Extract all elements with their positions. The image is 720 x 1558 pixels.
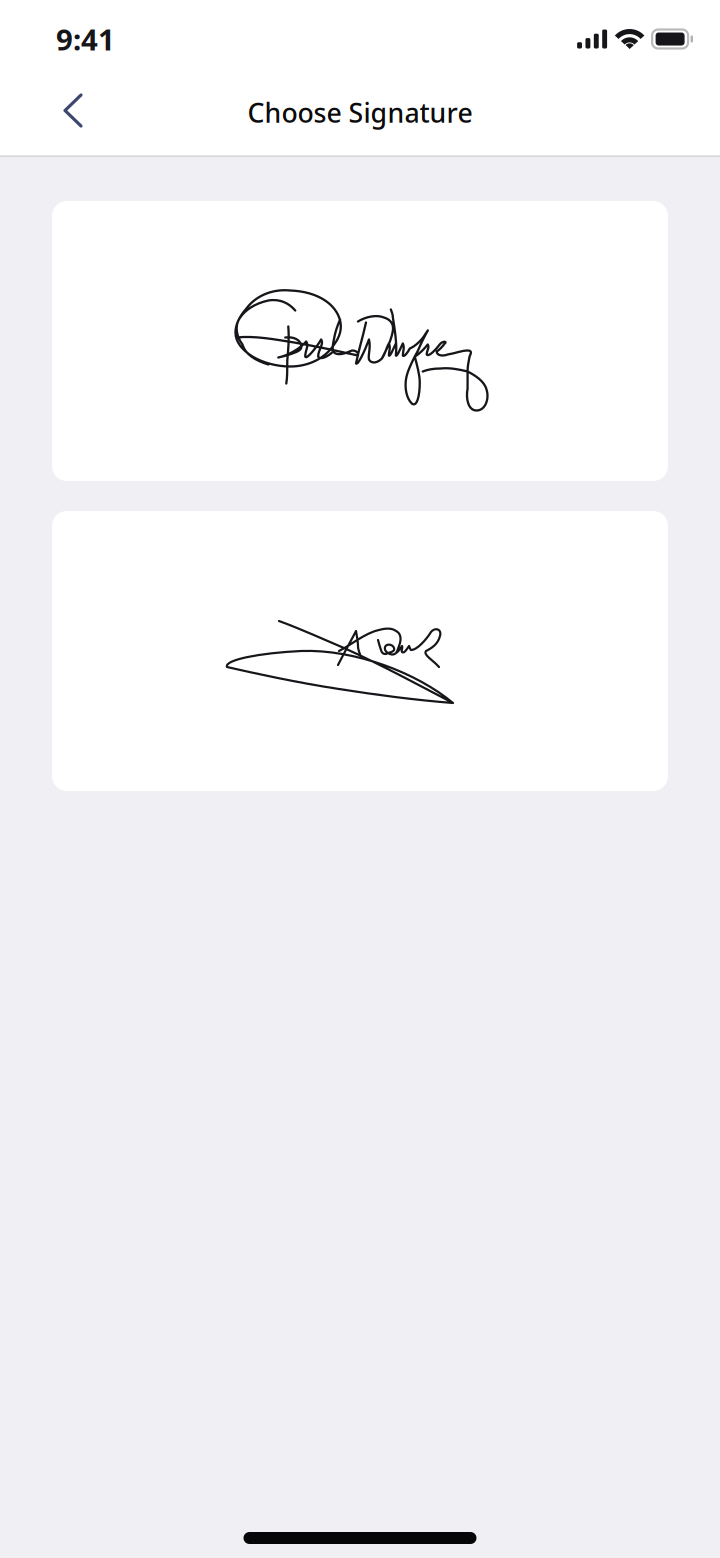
button[interactable]: Signature Oprah Winfrey	[52, 201, 668, 481]
staticText: 9:41	[56, 19, 115, 58]
button[interactable]: Signature two	[52, 511, 668, 791]
button[interactable]: Back	[0, 85, 111, 150]
staticText: Choose Signature	[247, 95, 472, 130]
